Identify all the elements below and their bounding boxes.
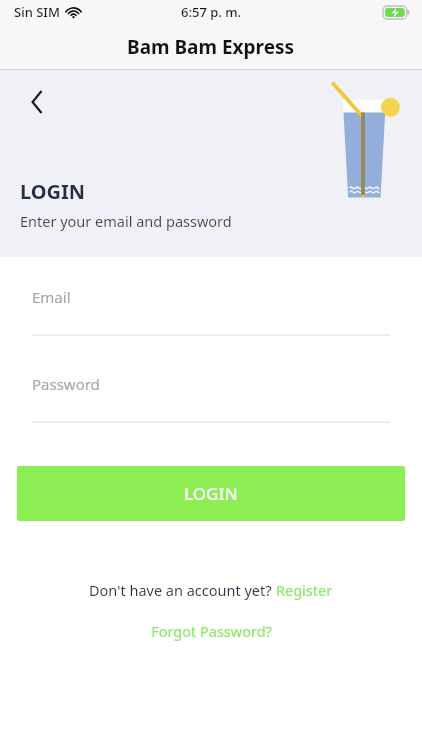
button[interactable]: Password	[32, 374, 390, 423]
staticText: Don't have an account yet?	[89, 580, 276, 600]
staticText: LOGIN	[184, 482, 238, 505]
button[interactable]: Forgot Password?	[151, 621, 272, 641]
button[interactable]: Email	[32, 287, 390, 336]
staticText: Password	[32, 374, 100, 394]
staticText: LOGIN	[20, 178, 86, 205]
staticText: 6:57 p. m.	[181, 3, 242, 21]
staticText: Register	[276, 580, 333, 600]
staticText: Bam Bam Express	[127, 34, 295, 60]
button[interactable]: Back	[18, 82, 58, 122]
staticText: Sin SIM	[14, 3, 60, 21]
staticText: Forgot Password?	[151, 621, 272, 641]
button[interactable]: LOGIN	[17, 466, 405, 521]
staticText: Enter your email and password	[20, 211, 232, 231]
button[interactable]: Register	[276, 580, 333, 600]
staticText: Email	[32, 287, 71, 307]
